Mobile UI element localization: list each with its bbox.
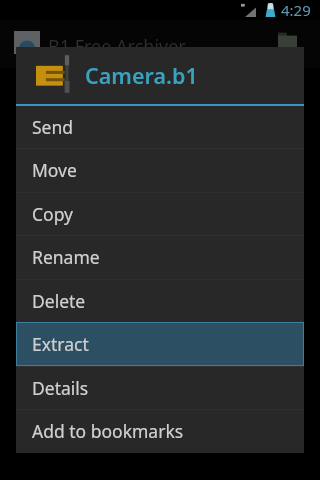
button[interactable]: Extract — [16, 322, 304, 366]
staticText: Move — [32, 158, 77, 182]
button[interactable]: Details — [16, 366, 304, 410]
button[interactable]: Copy — [16, 192, 304, 236]
staticText: Delete — [32, 289, 86, 313]
button[interactable]: Move — [16, 148, 304, 192]
button[interactable]: Delete — [16, 279, 304, 323]
button[interactable]: Add to bookmarks — [16, 409, 304, 453]
staticText: Send — [32, 115, 74, 139]
staticText: 4:29 — [281, 0, 311, 20]
staticText: Extract — [32, 332, 89, 356]
staticText: Copy — [32, 202, 73, 226]
button[interactable]: Send — [16, 105, 304, 149]
button[interactable]: Folders — [278, 32, 297, 47]
button[interactable]: App icon — [14, 31, 40, 54]
staticText: B1 Free Archiver — [48, 34, 186, 59]
staticText: Rename — [32, 245, 100, 269]
staticText: Add to bookmarks — [32, 419, 184, 443]
staticText: Details — [32, 376, 89, 400]
staticText: Camera.b1 — [85, 61, 198, 90]
button[interactable]: Rename — [16, 235, 304, 279]
